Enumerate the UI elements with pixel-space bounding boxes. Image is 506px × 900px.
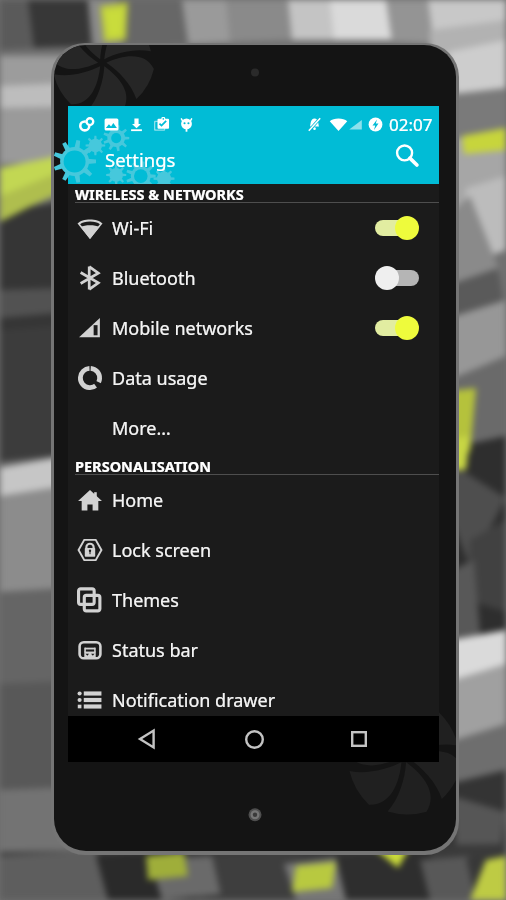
staticText: Home <box>112 488 164 513</box>
staticText: Mobile networks <box>112 316 253 341</box>
button[interactable]: Lock screen <box>68 525 439 575</box>
staticText: More… <box>112 416 171 441</box>
staticText: Wi-Fi <box>112 216 154 241</box>
button[interactable]: Bluetooth <box>68 253 439 303</box>
staticText: Notification drawer <box>112 688 276 713</box>
button[interactable]: Recents <box>333 716 385 762</box>
button[interactable]: Themes <box>68 575 439 625</box>
button[interactable]: Status bar <box>68 625 439 675</box>
staticText: PERSONALISATION <box>75 456 211 476</box>
staticText: Settings <box>105 147 176 172</box>
button[interactable]: Notification drawer <box>68 675 439 725</box>
button[interactable]: Home <box>228 716 280 762</box>
button[interactable]: Back <box>122 716 174 762</box>
staticText: 02:07 <box>389 113 433 136</box>
staticText: Status bar <box>112 638 199 663</box>
staticText: Themes <box>112 588 179 613</box>
button[interactable]: Data usage <box>68 353 439 403</box>
staticText: Bluetooth <box>112 266 196 291</box>
staticText: Data usage <box>112 366 208 391</box>
staticText: WIRELESS & NETWORKS <box>75 184 244 203</box>
button[interactable]: More… <box>68 403 439 453</box>
button[interactable]: Mobile networks <box>68 303 439 353</box>
button[interactable]: Wi-Fi <box>68 203 439 253</box>
staticText: Lock screen <box>112 538 212 563</box>
button[interactable]: Home <box>68 475 439 525</box>
button[interactable]: Search <box>384 133 430 179</box>
